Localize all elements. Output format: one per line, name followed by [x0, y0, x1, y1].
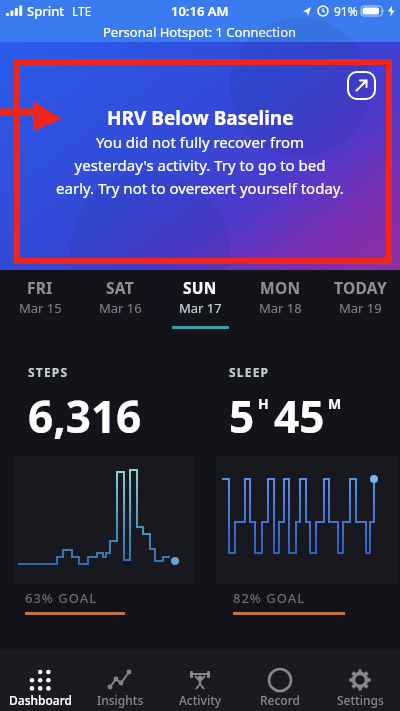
staticText: Mar 18: [259, 299, 302, 317]
staticText: Mar 15: [19, 299, 62, 317]
staticText: 82% GOAL: [233, 589, 306, 607]
staticText: Activity: [179, 692, 222, 708]
staticText: Record: [260, 692, 300, 708]
staticText: Dashboard: [9, 692, 72, 708]
staticText: 45: [274, 386, 325, 446]
staticText: Personal Hotspot: 1 Connection: [103, 23, 297, 41]
staticText: TODAY: [334, 277, 387, 298]
staticText: MON: [260, 277, 301, 298]
staticText: You did not fully recover from yesterday…: [56, 132, 344, 198]
button[interactable]: FRI: [0, 270, 80, 340]
button[interactable]: Insights: [80, 650, 160, 711]
staticText: SUN: [183, 277, 217, 298]
staticText: HRV Below Baseline: [107, 105, 294, 131]
button[interactable]: HRV Below Baseline: [0, 42, 400, 270]
staticText: Mar 17: [179, 299, 222, 317]
button[interactable]: SAT: [80, 270, 160, 340]
staticText: 6,316: [28, 386, 142, 446]
staticText: M: [328, 394, 342, 413]
button[interactable]: MON: [240, 270, 320, 340]
staticText: Settings: [337, 692, 384, 708]
staticText: Mar 19: [339, 299, 382, 317]
staticText: H: [258, 394, 269, 413]
staticText: Insights: [97, 692, 144, 708]
button[interactable]: [348, 72, 375, 99]
staticText: 5: [229, 386, 255, 446]
button[interactable]: Activity: [160, 650, 240, 711]
staticText: 91%: [334, 3, 358, 19]
staticText: 10:16 AM: [171, 2, 229, 20]
staticText: 63% GOAL: [25, 589, 98, 607]
staticText: Sprint: [27, 2, 65, 20]
staticText: SLEEP: [229, 364, 270, 380]
button[interactable]: Settings: [320, 650, 400, 711]
staticText: STEPS: [28, 364, 69, 380]
button[interactable]: TODAY: [320, 270, 400, 340]
button[interactable]: Personal Hotspot: 1 Connection: [0, 21, 400, 42]
button[interactable]: Record: [240, 650, 320, 711]
button[interactable]: SUN: [160, 270, 240, 340]
staticText: LTE: [72, 3, 92, 19]
button[interactable]: Dashboard: [0, 650, 80, 711]
staticText: Mar 16: [99, 299, 142, 317]
staticText: SAT: [106, 277, 135, 298]
staticText: FRI: [27, 277, 53, 298]
